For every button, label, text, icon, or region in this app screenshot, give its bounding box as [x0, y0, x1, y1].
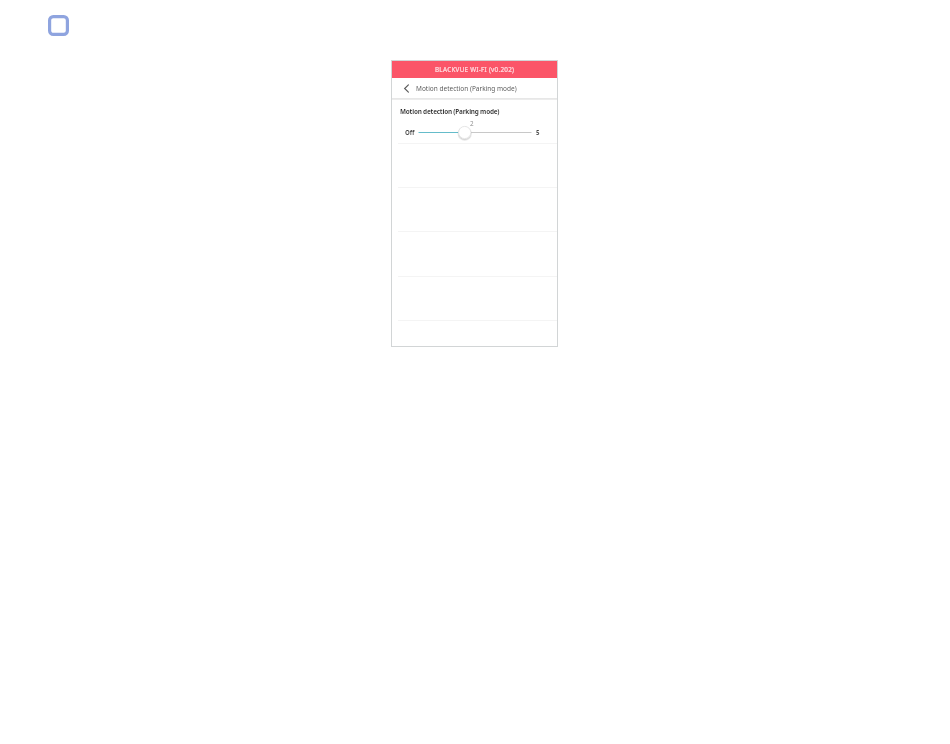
button[interactable]: Motion detection sensitivity slider [416, 124, 534, 141]
staticText: BLACKVUE WI-FI (v0.202) [435, 65, 515, 74]
staticText: 5 [536, 128, 540, 136]
staticText: Off [405, 128, 415, 136]
staticText: Motion detection (Parking mode) [400, 107, 500, 116]
staticText: 2 [470, 119, 474, 128]
button[interactable]: App icon [48, 15, 69, 36]
button[interactable]: Back [392, 78, 416, 98]
staticText: Motion detection (Parking mode) [416, 84, 517, 93]
button[interactable]: Motion detection (Parking mode) [416, 78, 557, 98]
